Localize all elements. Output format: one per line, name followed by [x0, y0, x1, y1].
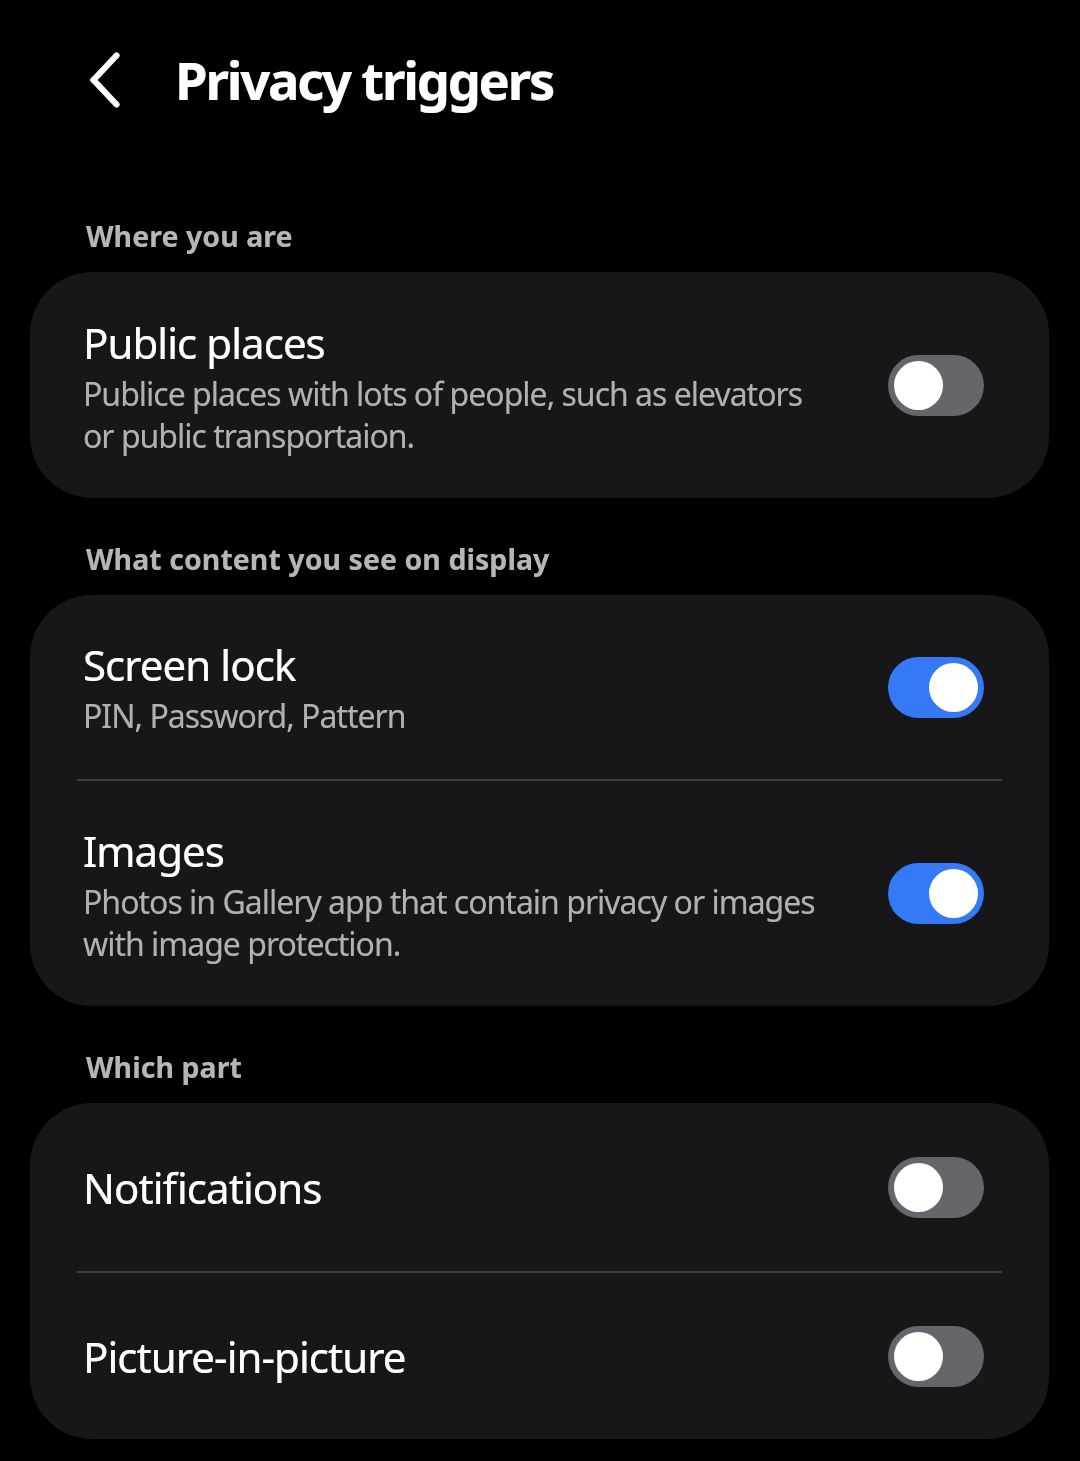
- staticText: Which part: [86, 1048, 242, 1087]
- staticText: Screen lock: [83, 636, 296, 693]
- button[interactable]: Picture-in-picture: [30, 1273, 1049, 1439]
- button[interactable]: Switch on: [888, 657, 984, 718]
- button[interactable]: Switch off: [888, 1326, 984, 1387]
- staticText: Photos in Gallery app that contain priva…: [83, 880, 829, 965]
- button[interactable]: Public places: [30, 272, 1049, 498]
- button[interactable]: Notifications: [30, 1103, 1049, 1271]
- staticText: Images: [83, 822, 225, 879]
- button[interactable]: Switch off: [888, 1157, 984, 1218]
- button[interactable]: Images: [30, 781, 1049, 1006]
- button[interactable]: Switch on: [888, 863, 984, 924]
- staticText: Where you are: [86, 217, 293, 256]
- button[interactable]: Screen lock: [30, 595, 1049, 779]
- staticText: Privacy triggers: [175, 44, 554, 116]
- staticText: Picture-in-picture: [83, 1328, 406, 1385]
- button[interactable]: Back: [58, 33, 152, 127]
- staticText: What content you see on display: [86, 540, 550, 579]
- staticText: Publice places with lots of people, such…: [83, 372, 829, 457]
- staticText: Notifications: [83, 1159, 322, 1216]
- staticText: PIN, Password, Pattern: [83, 694, 406, 738]
- button[interactable]: Switch off: [888, 355, 984, 416]
- staticText: Public places: [83, 314, 325, 371]
